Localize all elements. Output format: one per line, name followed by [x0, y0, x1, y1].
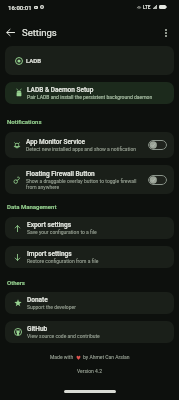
staticText: Detect new installed apps and show a not… — [26, 146, 137, 152]
staticText: Show a draggable overlay button to toggl… — [26, 178, 145, 190]
staticText: LADB & Daemon Setup — [27, 86, 94, 94]
staticText: LTE — [143, 5, 151, 10]
button[interactable]: Export settings — [5, 217, 174, 239]
staticText: Others — [7, 279, 25, 286]
staticText: by Ahmet Can Arslan — [83, 354, 130, 360]
button[interactable]: Back — [2, 24, 19, 41]
button[interactable]: LADB — [5, 46, 174, 75]
button[interactable]: Donate — [5, 292, 174, 314]
staticText: Import settings — [27, 250, 72, 258]
button[interactable] — [148, 175, 167, 185]
staticText: Pair LADB and install the persistent bac… — [27, 94, 153, 100]
staticText: Export settings — [27, 221, 72, 229]
button[interactable]: App Monitor Service — [5, 132, 174, 158]
button[interactable] — [148, 140, 167, 150]
staticText: App Monitor Service — [26, 138, 85, 146]
staticText: Data Management — [7, 203, 57, 210]
staticText: LADB — [26, 57, 42, 64]
staticText: Restore configuration from a file — [27, 258, 99, 264]
staticText: Version 4.2 — [77, 368, 103, 374]
button[interactable]: Floating Firewall Button — [5, 165, 174, 194]
staticText: 16:00:01 — [8, 4, 32, 11]
button[interactable]: GitHub — [5, 321, 174, 343]
staticText: Notifications — [7, 118, 42, 125]
staticText: Made with — [50, 354, 74, 360]
staticText: View source code and contribute — [27, 333, 100, 339]
staticText: Support the developer — [27, 304, 76, 310]
staticText: Donate — [27, 296, 48, 304]
button[interactable]: More options — [157, 24, 174, 41]
button[interactable]: Import settings — [5, 246, 174, 268]
staticText: GitHub — [27, 325, 48, 333]
staticText: Settings — [22, 27, 57, 38]
staticText: Save your configuration to a file — [27, 229, 97, 235]
staticText: Floating Firewall Button — [26, 170, 95, 178]
button[interactable]: LADB & Daemon Setup — [5, 82, 174, 104]
